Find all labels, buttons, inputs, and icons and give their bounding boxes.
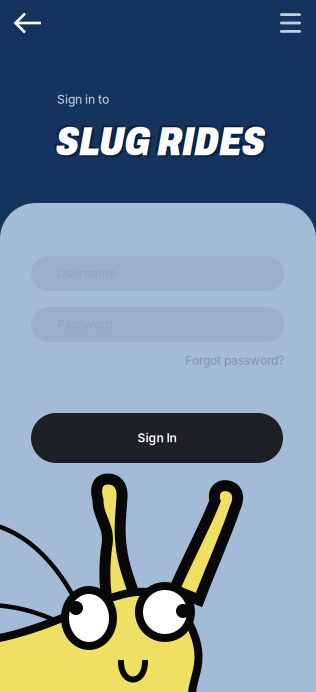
staticText: Forgot password?	[185, 353, 284, 367]
staticText: Username	[57, 266, 116, 281]
staticText: Sign In	[137, 431, 176, 445]
staticText: Sign in to	[57, 92, 109, 106]
button[interactable]: Back	[1, 1, 55, 45]
button[interactable]: Menu	[264, 1, 316, 45]
staticText: SLUG RIDES	[54, 117, 263, 162]
staticText: SLUG RIDES	[58, 121, 267, 166]
staticText: SLUG RIDES	[56, 119, 265, 164]
staticText: Password	[57, 317, 112, 332]
button[interactable]: Sign In	[31, 413, 283, 463]
button[interactable]: Forgot password?	[185, 353, 284, 367]
